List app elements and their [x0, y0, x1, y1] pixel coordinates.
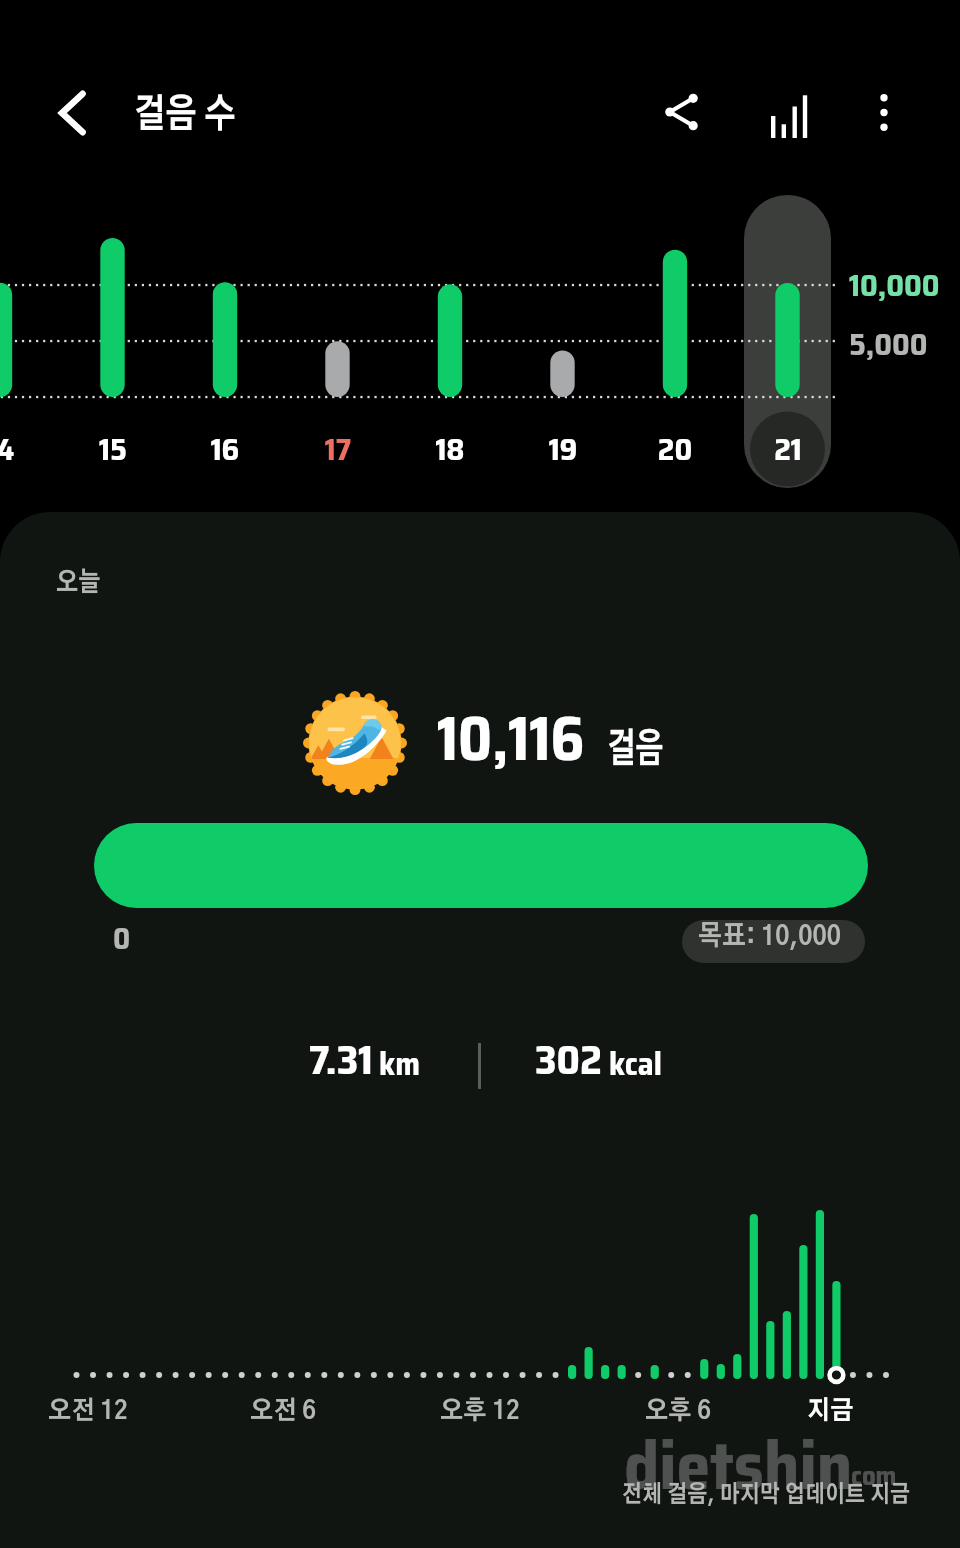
staticText: km [379, 1039, 420, 1089]
staticText: 14 [0, 425, 50, 474]
staticText: 10,116 [437, 690, 585, 788]
button[interactable]: Share [634, 64, 730, 160]
staticText: 오후 12 [440, 1398, 520, 1424]
button[interactable]: 걸음 수 [120, 62, 260, 160]
button[interactable]: Back [25, 65, 121, 161]
button[interactable]: More options [836, 64, 932, 160]
staticText: 16 [175, 425, 275, 474]
staticText: 오전 12 [48, 1398, 128, 1424]
button[interactable]: Statistics [743, 66, 839, 162]
staticText: 7.31 [309, 1027, 373, 1092]
staticText: 오후 6 [645, 1398, 711, 1424]
staticText: 전체 걸음, 마지막 업데이트 지금 [622, 1483, 910, 1507]
staticText: 20 [625, 425, 725, 474]
staticText: kcal [609, 1039, 662, 1089]
staticText: 지금 [807, 1398, 854, 1424]
staticText: 15 [63, 425, 163, 474]
staticText: 21 [738, 425, 838, 474]
staticText: 302 [535, 1027, 603, 1092]
staticText: 17 [288, 425, 388, 474]
staticText: 목표: 10,000 [698, 922, 841, 950]
staticText: com [851, 1455, 897, 1496]
staticText: 오전 6 [250, 1398, 316, 1424]
staticText: 오늘 [56, 570, 101, 597]
staticText: dietshin [624, 1414, 853, 1519]
button[interactable] [682, 920, 865, 963]
staticText: 18 [400, 425, 500, 474]
staticText: 0 [113, 915, 131, 962]
staticText: 걸음 [607, 730, 664, 770]
button[interactable]: Step progress [94, 823, 868, 908]
staticText: 걸음 수 [134, 95, 236, 135]
staticText: 10,000 [849, 261, 940, 310]
staticText: 5,000 [849, 320, 928, 369]
staticText: 19 [513, 425, 613, 474]
